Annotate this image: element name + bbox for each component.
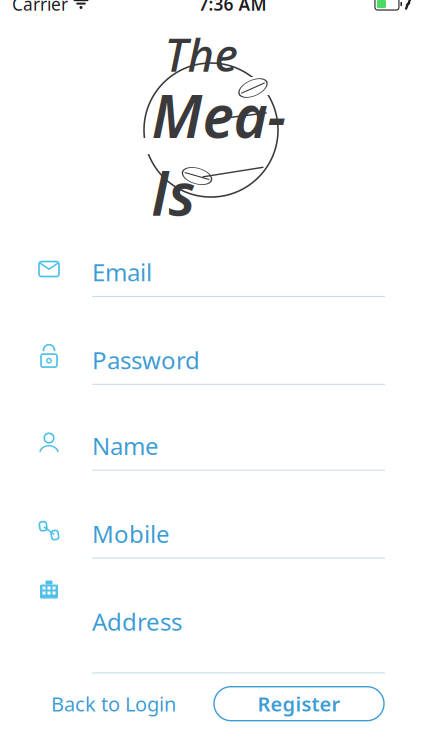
staticText: Meals xyxy=(151,76,286,232)
staticText: Back to Login xyxy=(51,690,176,717)
staticText: Name xyxy=(92,430,159,462)
button[interactable]: Register xyxy=(214,687,384,721)
staticText: The xyxy=(164,24,237,84)
staticText: Register xyxy=(257,690,340,717)
staticText: Email xyxy=(92,256,152,288)
staticText: 7:36 AM xyxy=(198,0,266,15)
staticText: Carrier xyxy=(12,0,68,15)
staticText: Password xyxy=(92,344,200,376)
button[interactable]: Back to Login xyxy=(49,681,178,726)
staticText: Address xyxy=(92,605,182,637)
staticText: Mobile xyxy=(92,518,170,550)
